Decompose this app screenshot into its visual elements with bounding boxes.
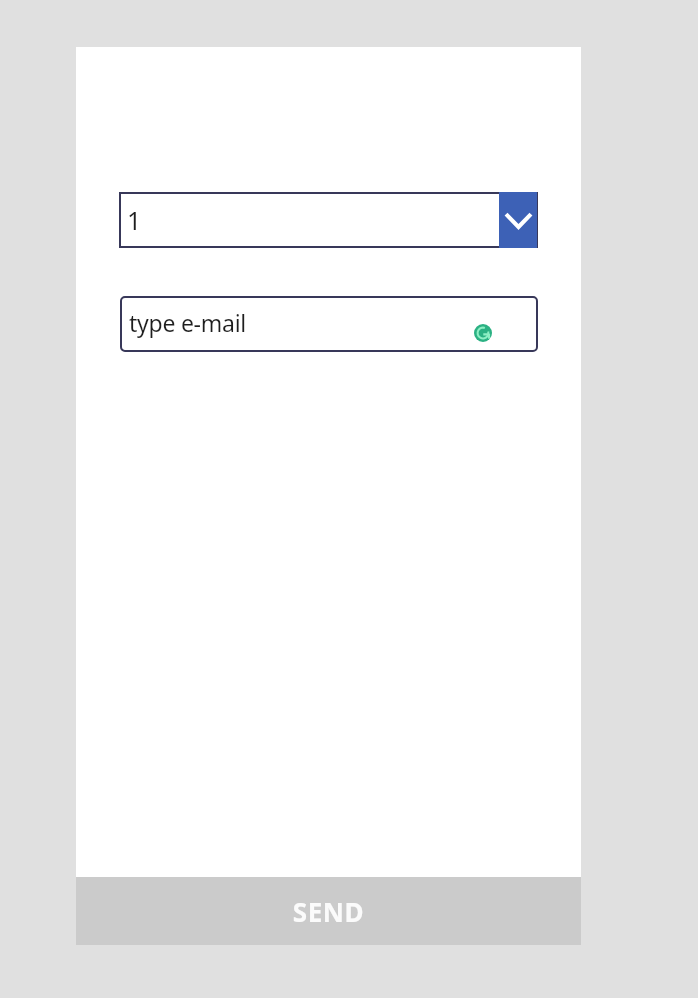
staticText: 1: [127, 203, 142, 237]
button[interactable]: type e-mail: [120, 296, 538, 352]
button[interactable]: Open dropdown: [499, 192, 537, 248]
button[interactable]: SEND: [76, 877, 581, 945]
staticText: type e-mail: [129, 307, 247, 338]
staticText: SEND: [76, 894, 581, 929]
button[interactable]: Refresh: [474, 324, 492, 342]
button[interactable]: 1: [119, 192, 538, 248]
